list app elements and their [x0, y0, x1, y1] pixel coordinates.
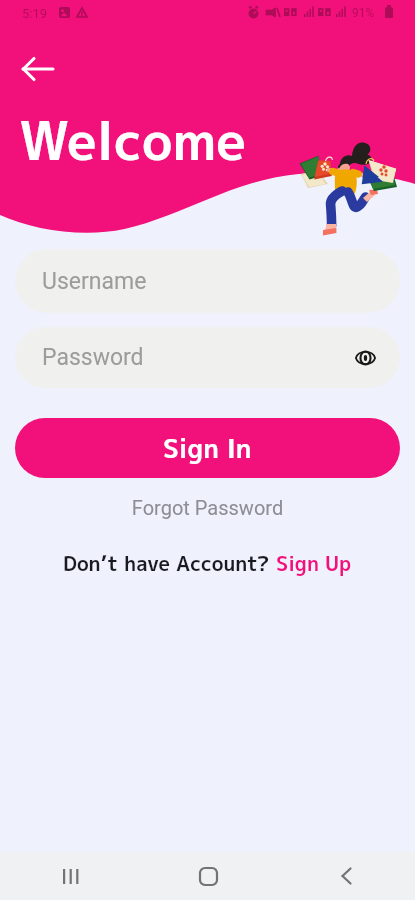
button[interactable]: Home — [139, 852, 277, 900]
button[interactable]: Show password — [352, 345, 378, 371]
button[interactable]: Password — [15, 327, 400, 388]
staticText: Sign In — [163, 430, 252, 466]
button[interactable]: Username — [15, 249, 400, 313]
staticText: Password — [42, 344, 144, 371]
staticText: 91% — [352, 6, 375, 20]
button[interactable]: Forgot Password — [0, 496, 415, 519]
button[interactable]: Recents — [0, 852, 139, 900]
button[interactable]: Back — [14, 46, 60, 92]
button[interactable]: Sign In — [15, 418, 400, 478]
staticText: Username — [42, 268, 147, 295]
staticText: Don’t have Account? — [63, 549, 276, 577]
button[interactable]: Sign Up — [276, 549, 352, 577]
staticText: 5:19 — [22, 6, 48, 21]
staticText: Welcome — [19, 104, 246, 177]
button[interactable]: Back — [277, 852, 415, 900]
